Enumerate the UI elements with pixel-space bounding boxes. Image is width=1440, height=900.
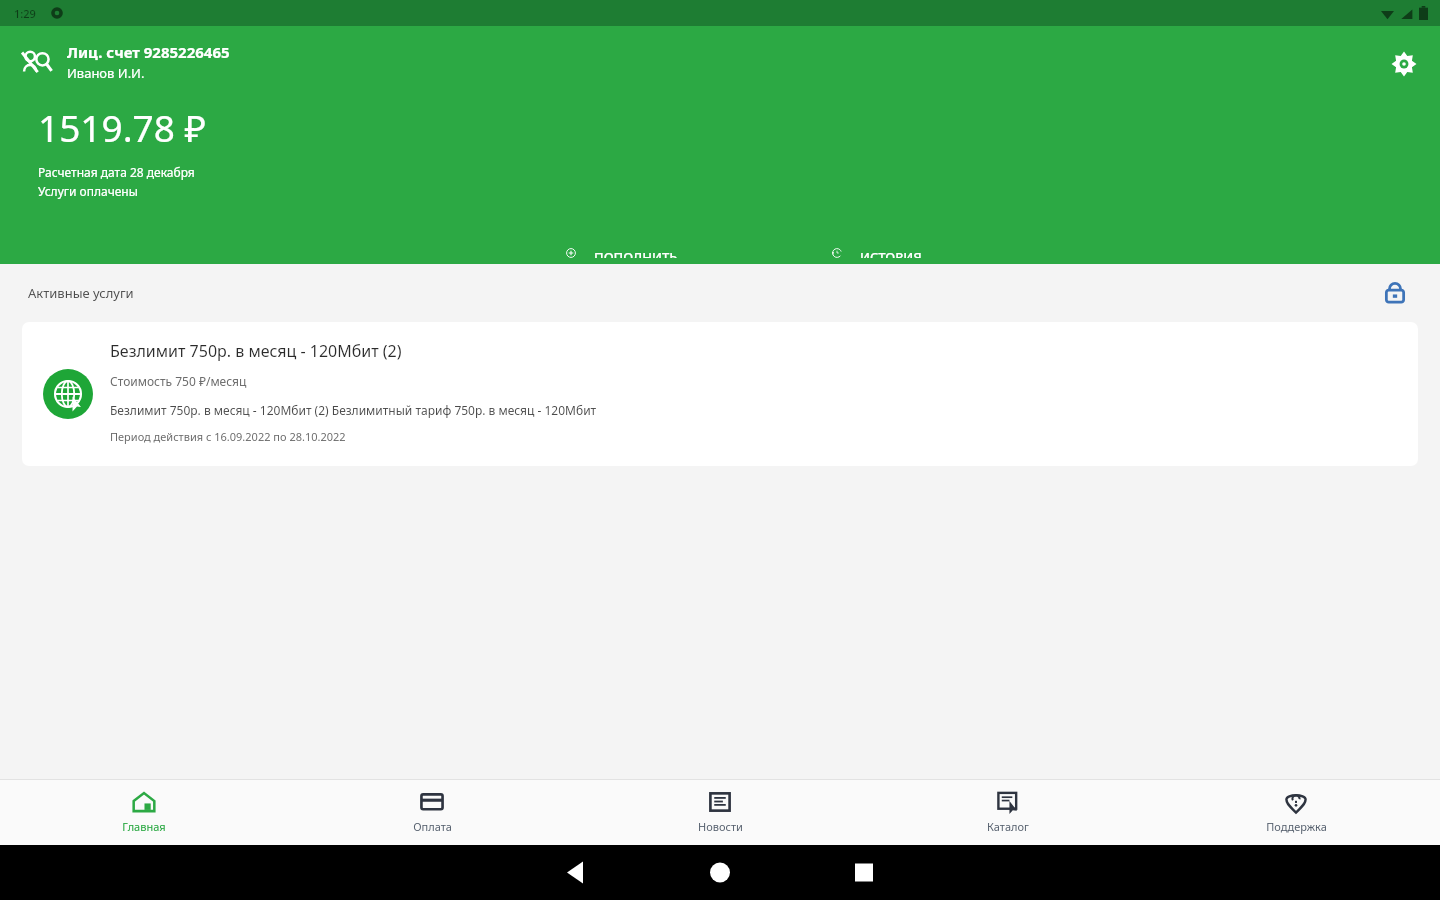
button[interactable]: Безлимит 750р. в месяц - 120Мбит (2) [22,322,1418,466]
staticText: Активные услуги [28,284,134,302]
staticText: 1519.78 ₽ [38,102,207,152]
staticText: Поддержка [1266,819,1327,834]
button[interactable]: Новости [576,779,864,845]
staticText: Лиц. счет 9285226465 [67,42,230,62]
staticText: Главная [122,819,166,834]
staticText: Иванов И.И. [67,64,145,82]
staticText: Услуги оплачены [38,183,138,199]
staticText: ИСТОРИЯ [860,248,922,258]
button[interactable]: Оплата [288,779,576,845]
staticText: Безлимит 750р. в месяц - 120Мбит (2) [110,340,402,362]
staticText: Расчетная дата 28 декабря [38,164,195,180]
button[interactable]: ПОПОЛНИТЬ [556,242,682,264]
staticText: Каталог [987,819,1029,834]
button[interactable]: Главная [0,779,288,845]
staticText: Период действия с 16.09.2022 по 28.10.20… [110,429,346,444]
button[interactable]: Settings [1386,46,1422,82]
button[interactable]: Lock [1378,276,1412,310]
button[interactable]: ИСТОРИЯ [822,242,926,264]
button[interactable]: Поддержка [1152,779,1440,845]
staticText: ПОПОЛНИТЬ [594,248,678,258]
staticText: Безлимит 750р. в месяц - 120Мбит (2) Без… [110,402,597,418]
button[interactable]: Account [20,45,54,79]
button[interactable]: Каталог [864,779,1152,845]
staticText: 1:29 [14,6,36,21]
staticText: Оплата [413,819,452,834]
staticText: Стоимость 750 ₽/месяц [110,373,247,389]
staticText: Новости [698,819,743,834]
